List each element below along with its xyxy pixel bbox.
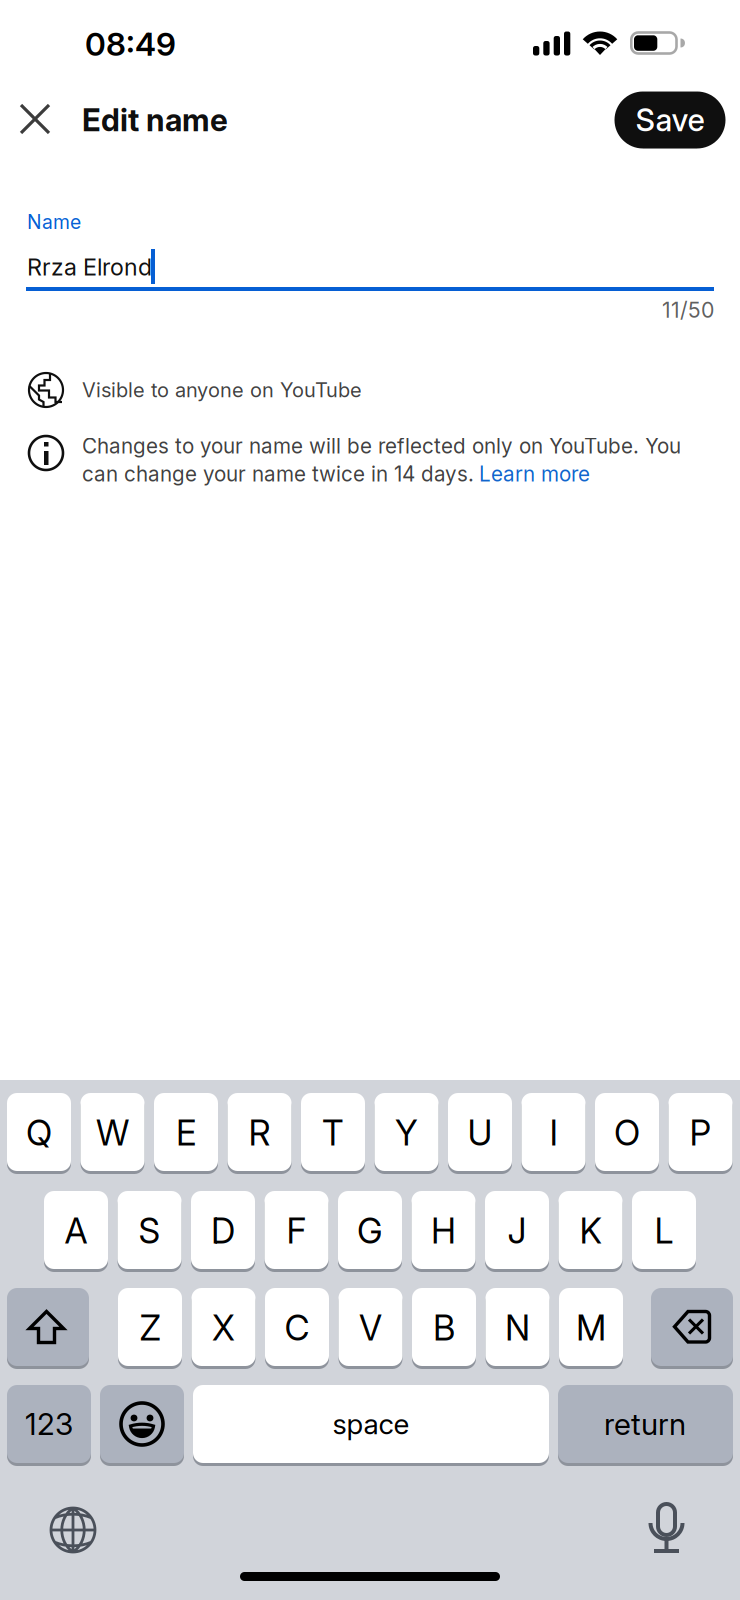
- button[interactable]: K: [0, 0, 740, 1600]
- staticText: space: [332, 1407, 409, 1441]
- button[interactable]: Dictate: [0, 0, 740, 1600]
- staticText: Y: [395, 1112, 418, 1154]
- staticText: F: [286, 1210, 306, 1252]
- button[interactable]: S: [0, 0, 740, 1600]
- staticText: C: [284, 1307, 309, 1349]
- button[interactable]: O: [0, 0, 740, 1600]
- staticText: 08:49: [85, 25, 176, 63]
- button[interactable]: U: [0, 0, 740, 1600]
- staticText: Learn more: [479, 461, 590, 486]
- button[interactable]: Emoji: [0, 0, 740, 1600]
- button[interactable]: Save: [0, 0, 740, 1600]
- staticText: N: [505, 1307, 530, 1349]
- staticText: I: [549, 1112, 557, 1154]
- button[interactable]: Delete: [0, 0, 740, 1600]
- staticText: Changes to your name will be reflected o…: [82, 433, 681, 458]
- staticText: O: [614, 1112, 640, 1154]
- button[interactable]: Name field: [0, 0, 740, 1600]
- staticText: T: [322, 1112, 344, 1154]
- button[interactable]: Learn more: [0, 0, 740, 1600]
- button[interactable]: P: [0, 0, 740, 1600]
- staticText: B: [433, 1307, 455, 1349]
- button[interactable]: M: [0, 0, 740, 1600]
- staticText: W: [96, 1112, 129, 1154]
- button[interactable]: L: [0, 0, 740, 1600]
- button[interactable]: return: [0, 0, 740, 1600]
- button[interactable]: R: [0, 0, 740, 1600]
- button[interactable]: B: [0, 0, 740, 1600]
- button[interactable]: A: [0, 0, 740, 1600]
- button[interactable]: J: [0, 0, 740, 1600]
- staticText: Z: [139, 1307, 160, 1349]
- button[interactable]: space: [0, 0, 740, 1600]
- staticText: L: [654, 1210, 673, 1252]
- staticText: P: [689, 1112, 711, 1154]
- button[interactable]: V: [0, 0, 740, 1600]
- staticText: D: [211, 1210, 235, 1252]
- button[interactable]: Y: [0, 0, 740, 1600]
- button[interactable]: Close: [0, 0, 740, 1600]
- staticText: can change your name twice in 14 days.: [82, 461, 474, 486]
- button[interactable]: I: [0, 0, 740, 1600]
- staticText: Q: [26, 1112, 52, 1154]
- staticText: 11/50: [662, 297, 714, 323]
- button[interactable]: G: [0, 0, 740, 1600]
- staticText: A: [64, 1210, 87, 1252]
- staticText: 123: [25, 1406, 73, 1442]
- staticText: M: [576, 1307, 606, 1349]
- button[interactable]: Switch keyboard: [0, 0, 740, 1600]
- staticText: Rrza Elrond: [27, 253, 152, 281]
- staticText: K: [579, 1210, 601, 1252]
- staticText: J: [507, 1210, 526, 1252]
- button[interactable]: N: [0, 0, 740, 1600]
- button[interactable]: E: [0, 0, 740, 1600]
- staticText: R: [248, 1112, 270, 1154]
- staticText: H: [431, 1210, 456, 1252]
- button[interactable]: X: [0, 0, 740, 1600]
- button[interactable]: Shift: [0, 0, 740, 1600]
- button[interactable]: F: [0, 0, 740, 1600]
- staticText: X: [212, 1307, 235, 1349]
- staticText: G: [357, 1210, 383, 1252]
- staticText: return: [604, 1406, 686, 1442]
- button[interactable]: H: [0, 0, 740, 1600]
- staticText: Edit name: [82, 101, 228, 138]
- button[interactable]: Q: [0, 0, 740, 1600]
- staticText: Name: [27, 210, 81, 234]
- staticText: E: [176, 1112, 196, 1154]
- button[interactable]: D: [0, 0, 740, 1600]
- button[interactable]: Z: [0, 0, 740, 1600]
- button[interactable]: T: [0, 0, 740, 1600]
- staticText: S: [138, 1210, 160, 1252]
- staticText: U: [467, 1112, 492, 1154]
- button[interactable]: 123: [0, 0, 740, 1600]
- staticText: Save: [635, 101, 704, 138]
- button[interactable]: C: [0, 0, 740, 1600]
- staticText: Visible to anyone on YouTube: [82, 378, 362, 402]
- button[interactable]: W: [0, 0, 740, 1600]
- staticText: V: [359, 1307, 382, 1349]
